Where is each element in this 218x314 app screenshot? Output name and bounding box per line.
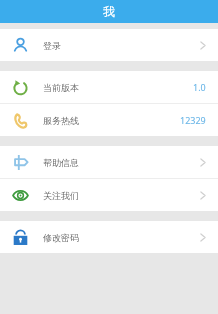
other: Version <box>12 79 29 96</box>
button[interactable]: Account <box>0 29 218 61</box>
staticText: 修改密码 <box>43 232 79 243</box>
staticText: 帮助信息 <box>43 157 79 168</box>
other: Account <box>12 37 29 54</box>
staticText: 我 <box>103 4 115 19</box>
staticText: 关注我们 <box>43 190 79 201</box>
button[interactable]: Follow us <box>0 179 218 211</box>
other: Help <box>12 154 29 171</box>
staticText: 登录 <box>43 40 61 51</box>
button[interactable]: Change password <box>0 221 218 253</box>
button[interactable]: Help <box>0 146 218 178</box>
button[interactable]: Hotline <box>0 104 218 136</box>
staticText: 12329 <box>180 114 206 126</box>
button[interactable]: Version <box>0 71 218 103</box>
other: Hotline <box>12 112 29 129</box>
staticText: 1.0 <box>193 81 206 93</box>
staticText: 服务热线 <box>43 115 79 126</box>
other: Change password <box>12 229 29 246</box>
staticText: 当前版本 <box>43 82 79 93</box>
other: Follow us <box>12 187 29 204</box>
